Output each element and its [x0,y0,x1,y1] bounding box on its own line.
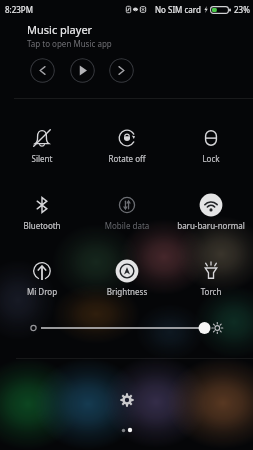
button[interactable]: Mi Drop [2,247,82,299]
staticText: baru-baru-normal [171,220,251,231]
staticText: Tap to open Music app [27,38,112,49]
button[interactable]: Brightness [87,247,167,299]
button[interactable]: Silent [2,114,82,166]
button[interactable]: Brightness slider [0,313,253,343]
button[interactable]: Lock [171,114,251,166]
button[interactable]: Rotate off [87,114,167,166]
staticText: Rotate off [87,153,167,164]
staticText: 8:23PM [5,4,33,15]
button[interactable]: Settings [112,385,141,414]
button[interactable]: Previous [30,58,55,83]
staticText: Torch [171,286,251,297]
button[interactable]: Next [109,58,134,83]
button[interactable]: Play [70,58,95,83]
button[interactable]: Mobile data [87,181,167,233]
staticText: Brightness [87,286,167,297]
staticText: Lock [171,153,251,164]
staticText: No SIM card [155,4,201,15]
staticText: Silent [2,153,82,164]
staticText: Bluetooth [2,220,82,231]
button[interactable]: Music player [0,18,253,98]
button[interactable]: Bluetooth [2,181,82,233]
staticText: Music player [27,22,93,37]
staticText: Mi Drop [2,286,82,297]
button[interactable]: Torch [171,247,251,299]
staticText: Mobile data [87,220,167,231]
button[interactable]: baru-baru-normal [171,181,251,233]
staticText: 23% [234,4,250,15]
